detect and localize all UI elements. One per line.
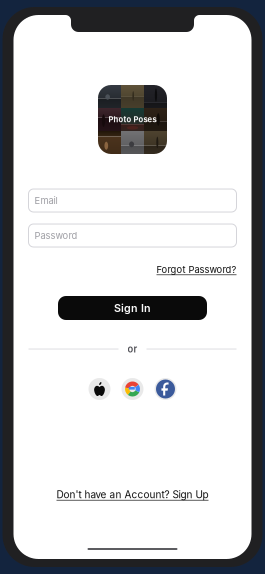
button[interactable]: Forgot Password? bbox=[156, 264, 236, 275]
staticText: Password bbox=[34, 230, 77, 241]
button[interactable]: Sign in with Apple bbox=[88, 378, 110, 400]
staticText: Sign In bbox=[114, 301, 151, 314]
button[interactable]: Email bbox=[28, 189, 236, 212]
staticText: or bbox=[127, 343, 137, 355]
button[interactable]: Sign in with Google bbox=[121, 378, 143, 400]
button[interactable]: Password bbox=[28, 224, 236, 247]
button[interactable]: Don't have an Account? Sign Up bbox=[56, 488, 208, 501]
button[interactable]: Sign in with Facebook bbox=[154, 378, 176, 400]
staticText: Photo Poses bbox=[108, 115, 156, 124]
staticText: Forgot Password? bbox=[156, 264, 236, 275]
staticText: Don't have an Account? Sign Up bbox=[56, 488, 208, 501]
staticText: Email bbox=[34, 195, 57, 206]
button[interactable]: Sign In bbox=[58, 296, 207, 320]
